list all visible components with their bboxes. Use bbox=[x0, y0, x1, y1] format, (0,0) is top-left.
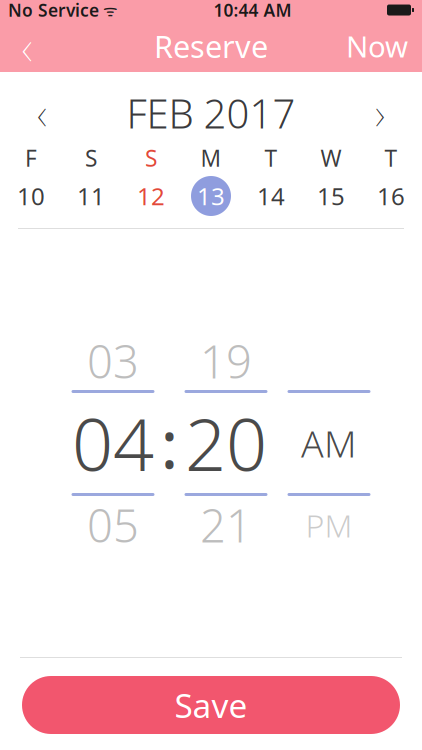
staticText: 10 bbox=[17, 180, 45, 212]
staticText: 03 bbox=[87, 331, 139, 391]
button[interactable]: Previous month bbox=[14, 86, 70, 140]
staticText: 12 bbox=[137, 180, 165, 212]
staticText: W bbox=[320, 143, 341, 173]
staticText: 04 bbox=[72, 395, 154, 491]
staticText: F bbox=[25, 143, 37, 173]
staticText: 11 bbox=[77, 180, 105, 212]
staticText: : bbox=[160, 399, 178, 487]
button[interactable]: Back bbox=[0, 21, 54, 71]
staticText: ‹ bbox=[21, 12, 32, 80]
staticText: S bbox=[85, 143, 97, 173]
button[interactable]: T bbox=[365, 148, 417, 216]
button[interactable]: Save bbox=[22, 676, 400, 734]
staticText: 20 bbox=[185, 395, 267, 491]
staticText: T bbox=[264, 143, 277, 173]
staticText: ᯤ bbox=[99, 0, 118, 21]
button[interactable]: S bbox=[65, 148, 117, 216]
staticText: ‹ bbox=[37, 83, 47, 143]
staticText: Now bbox=[346, 26, 408, 65]
staticText: Save bbox=[174, 683, 247, 727]
staticText: 19 bbox=[200, 331, 252, 391]
staticText: M bbox=[200, 143, 221, 173]
button[interactable]: T bbox=[245, 148, 297, 216]
staticText: 05 bbox=[87, 495, 139, 555]
button[interactable]: S bbox=[125, 148, 177, 216]
staticText: S bbox=[145, 143, 157, 173]
button[interactable]: W bbox=[305, 148, 357, 216]
staticText: 15 bbox=[317, 180, 345, 212]
staticText: 14 bbox=[257, 180, 285, 212]
button[interactable]: Next month bbox=[352, 86, 408, 140]
staticText: 16 bbox=[377, 180, 405, 212]
staticText: AM bbox=[301, 418, 357, 468]
staticText: › bbox=[375, 83, 385, 143]
staticText: T bbox=[384, 143, 397, 173]
button[interactable]: F bbox=[5, 148, 57, 216]
staticText: PM bbox=[305, 504, 352, 546]
staticText: No Service bbox=[8, 0, 99, 21]
staticText: Reserve bbox=[154, 26, 268, 66]
staticText: 21 bbox=[200, 495, 252, 555]
staticText: FEB 2017 bbox=[126, 86, 295, 139]
staticText: 10:44 AM bbox=[213, 0, 291, 21]
staticText: 13 bbox=[197, 180, 225, 212]
button[interactable]: M bbox=[185, 148, 237, 216]
button[interactable]: Now bbox=[346, 21, 422, 71]
